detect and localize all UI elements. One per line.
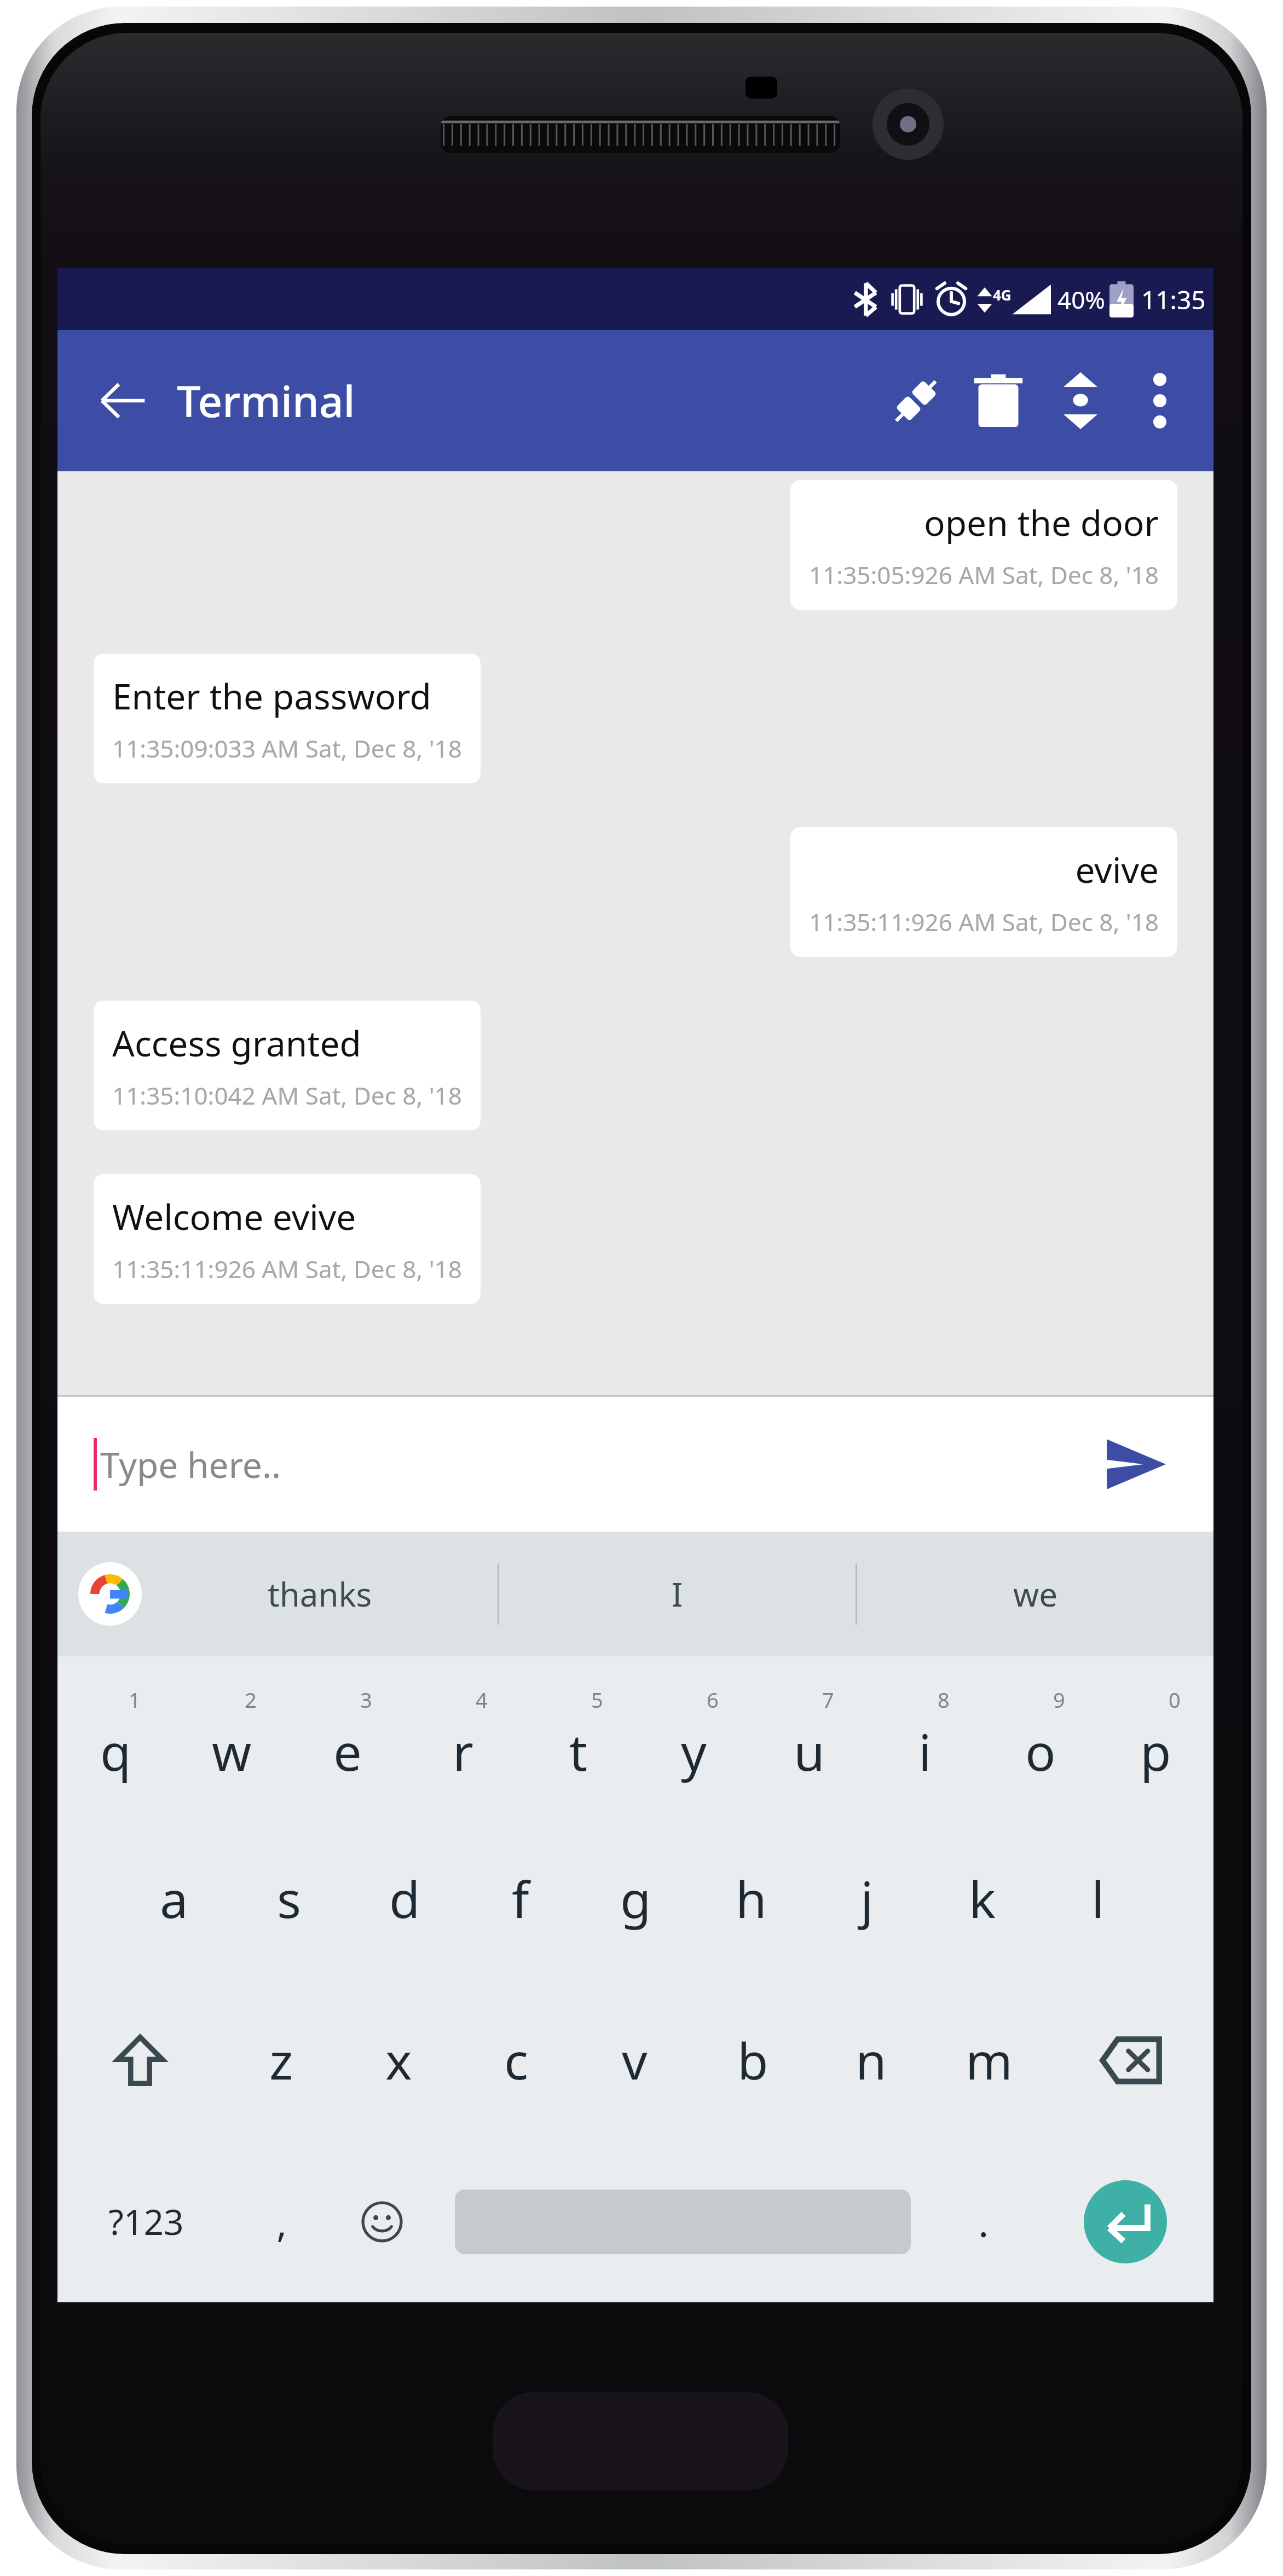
button[interactable]: 8 bbox=[867, 1656, 983, 1818]
button[interactable]: 1 bbox=[57, 1656, 174, 1818]
staticText: 8 bbox=[938, 1685, 950, 1714]
staticText: evive bbox=[1075, 846, 1159, 893]
button[interactable]: x bbox=[340, 1979, 458, 2141]
staticText: 9 bbox=[1053, 1685, 1065, 1714]
staticText: 11:35:11:926 AM Sat, Dec 8, '18 bbox=[112, 1252, 462, 1285]
staticText: 1 bbox=[129, 1685, 141, 1714]
button[interactable]: k bbox=[924, 1818, 1040, 1979]
staticText: 3 bbox=[360, 1685, 372, 1714]
button[interactable]: open the door bbox=[790, 480, 1177, 610]
staticText: e bbox=[333, 1717, 362, 1786]
staticText: 11:35:10:042 AM Sat, Dec 8, '18 bbox=[112, 1079, 462, 1112]
staticText: f bbox=[512, 1864, 529, 1933]
button[interactable]: Scroll bbox=[1039, 360, 1122, 442]
button[interactable]: Type here.. bbox=[57, 1397, 1213, 1532]
button[interactable]: s bbox=[232, 1818, 347, 1979]
staticText: 40% bbox=[1057, 283, 1105, 316]
staticText: 2 bbox=[245, 1685, 257, 1714]
staticText: j bbox=[860, 1864, 874, 1933]
staticText: s bbox=[277, 1864, 302, 1933]
button[interactable]: Send bbox=[1095, 1423, 1177, 1505]
staticText: u bbox=[794, 1717, 825, 1786]
staticText: 6 bbox=[707, 1685, 719, 1714]
button[interactable]: n bbox=[812, 1979, 930, 2141]
staticText: r bbox=[453, 1717, 473, 1786]
staticText: v bbox=[622, 2026, 648, 2094]
button[interactable]: m bbox=[930, 1979, 1048, 2141]
button[interactable]: 9 bbox=[983, 1656, 1098, 1818]
button[interactable]: Welcome evive bbox=[94, 1174, 481, 1304]
button[interactable]: Enter the password bbox=[94, 654, 481, 783]
button[interactable]: ?123 bbox=[57, 2141, 235, 2302]
button[interactable]: I bbox=[499, 1532, 856, 1656]
staticText: , bbox=[276, 2195, 287, 2249]
staticText: Type here.. bbox=[100, 1441, 281, 1488]
staticText: 4 bbox=[476, 1685, 488, 1714]
button[interactable]: Backspace bbox=[1048, 1979, 1213, 2141]
button[interactable]: evive bbox=[790, 827, 1177, 957]
staticText: z bbox=[269, 2026, 293, 2094]
staticText: 11:35 bbox=[1141, 282, 1206, 317]
staticText: g bbox=[620, 1864, 651, 1933]
staticText: . bbox=[978, 2195, 989, 2249]
button[interactable]: More options bbox=[1122, 362, 1198, 439]
button[interactable]: 3 bbox=[290, 1656, 405, 1818]
button[interactable]: Disconnect bbox=[875, 360, 957, 442]
button[interactable]: 4 bbox=[405, 1656, 521, 1818]
staticText: n bbox=[856, 2026, 887, 2094]
button[interactable]: Back bbox=[82, 360, 164, 442]
button[interactable]: Google bbox=[78, 1562, 142, 1626]
button[interactable]: 5 bbox=[521, 1656, 636, 1818]
button[interactable]: thanks bbox=[142, 1532, 498, 1656]
button[interactable]: z bbox=[222, 1979, 340, 2141]
button[interactable]: j bbox=[809, 1818, 924, 1979]
staticText: h bbox=[736, 1864, 767, 1933]
button[interactable]: 6 bbox=[636, 1656, 752, 1818]
button[interactable]: a bbox=[116, 1818, 232, 1979]
button[interactable]: l bbox=[1040, 1818, 1155, 1979]
staticText: 11:35:09:033 AM Sat, Dec 8, '18 bbox=[112, 732, 462, 765]
button[interactable]: Emoji bbox=[329, 2141, 435, 2302]
staticText: Welcome evive bbox=[112, 1193, 356, 1240]
button[interactable]: , bbox=[235, 2141, 329, 2302]
staticText: 5 bbox=[591, 1685, 603, 1714]
button[interactable]: Shift bbox=[57, 1979, 222, 2141]
button[interactable]: f bbox=[463, 1818, 578, 1979]
staticText: Access granted bbox=[112, 1019, 361, 1067]
button[interactable]: . bbox=[931, 2141, 1037, 2302]
staticText: x bbox=[385, 2026, 412, 2094]
staticText: b bbox=[737, 2026, 768, 2094]
staticText: a bbox=[160, 1864, 188, 1933]
staticText: d bbox=[389, 1864, 420, 1933]
staticText: 11:35:11:926 AM Sat, Dec 8, '18 bbox=[809, 905, 1159, 938]
staticText: l bbox=[1091, 1864, 1105, 1933]
staticText: 4G bbox=[993, 285, 1012, 304]
button[interactable]: d bbox=[347, 1818, 463, 1979]
staticText: q bbox=[100, 1717, 131, 1786]
staticText: c bbox=[504, 2026, 529, 2094]
button[interactable]: b bbox=[693, 1979, 812, 2141]
staticText: thanks bbox=[268, 1572, 372, 1616]
staticText: y bbox=[681, 1717, 707, 1786]
button[interactable]: Clear bbox=[957, 360, 1039, 442]
staticText: Terminal bbox=[177, 372, 355, 430]
button[interactable]: 0 bbox=[1098, 1656, 1213, 1818]
button[interactable]: 2 bbox=[174, 1656, 290, 1818]
button[interactable]: h bbox=[693, 1818, 809, 1979]
staticText: we bbox=[1013, 1572, 1057, 1616]
button[interactable]: c bbox=[458, 1979, 575, 2141]
staticText: t bbox=[569, 1717, 588, 1786]
staticText: p bbox=[1140, 1717, 1171, 1786]
button[interactable]: v bbox=[575, 1979, 693, 2141]
button[interactable]: Enter bbox=[1037, 2141, 1213, 2302]
staticText: 11:35:05:926 AM Sat, Dec 8, '18 bbox=[809, 558, 1159, 591]
button[interactable]: Access granted bbox=[94, 1001, 481, 1130]
staticText: i bbox=[918, 1717, 932, 1786]
staticText: ?123 bbox=[108, 2198, 184, 2245]
button[interactable]: g bbox=[578, 1818, 693, 1979]
button[interactable]: we bbox=[857, 1532, 1213, 1656]
staticText: w bbox=[212, 1717, 252, 1786]
button[interactable]: 7 bbox=[752, 1656, 867, 1818]
staticText: 0 bbox=[1169, 1685, 1181, 1714]
